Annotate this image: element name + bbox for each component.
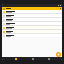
button[interactable] xyxy=(2,30,62,33)
button[interactable]: Profile xyxy=(46,57,51,60)
button[interactable]: Menu xyxy=(3,8,5,10)
button[interactable]: Home xyxy=(13,57,18,60)
button[interactable] xyxy=(2,26,62,29)
button[interactable] xyxy=(2,34,62,37)
button[interactable] xyxy=(2,14,62,17)
button[interactable] xyxy=(2,22,62,25)
button[interactable]: Compose xyxy=(56,52,61,57)
button[interactable] xyxy=(2,10,62,13)
button[interactable] xyxy=(2,18,62,21)
button[interactable]: Search xyxy=(30,57,35,60)
